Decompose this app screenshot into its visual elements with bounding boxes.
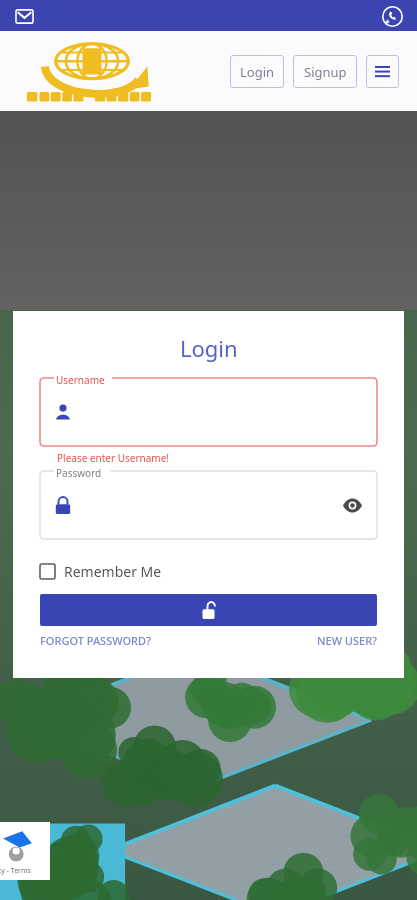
button[interactable]: Show password <box>339 492 365 518</box>
button[interactable]: Password <box>40 471 377 539</box>
staticText: FORGOT PASSWORD? <box>40 633 151 648</box>
button[interactable]: NEW USER? <box>277 629 377 651</box>
staticText: Remember Me <box>64 562 162 581</box>
button[interactable]: WhatsApp <box>378 2 406 30</box>
button[interactable]: reCAPTCHA privacy and terms <box>0 822 50 880</box>
staticText: Password <box>56 466 102 480</box>
staticText: acy - Terms <box>0 866 31 876</box>
button[interactable]: Purra Group home <box>22 36 162 106</box>
staticText: Signup <box>304 63 347 81</box>
staticText: Please enter Username! <box>57 451 170 465</box>
staticText: Login <box>240 63 275 81</box>
staticText: NEW USER? <box>316 633 377 648</box>
button[interactable]: Email <box>11 3 37 29</box>
button[interactable]: Menu <box>366 55 399 88</box>
staticText: Login <box>180 333 238 363</box>
button[interactable]: Username <box>40 378 377 446</box>
button[interactable]: FORGOT PASSWORD? <box>40 629 200 651</box>
button[interactable]: Login <box>230 55 284 88</box>
button[interactable]: Remember Me <box>40 558 162 584</box>
staticText: Username <box>56 373 105 387</box>
button[interactable]: Login <box>40 594 377 626</box>
button[interactable]: Signup <box>293 55 357 88</box>
